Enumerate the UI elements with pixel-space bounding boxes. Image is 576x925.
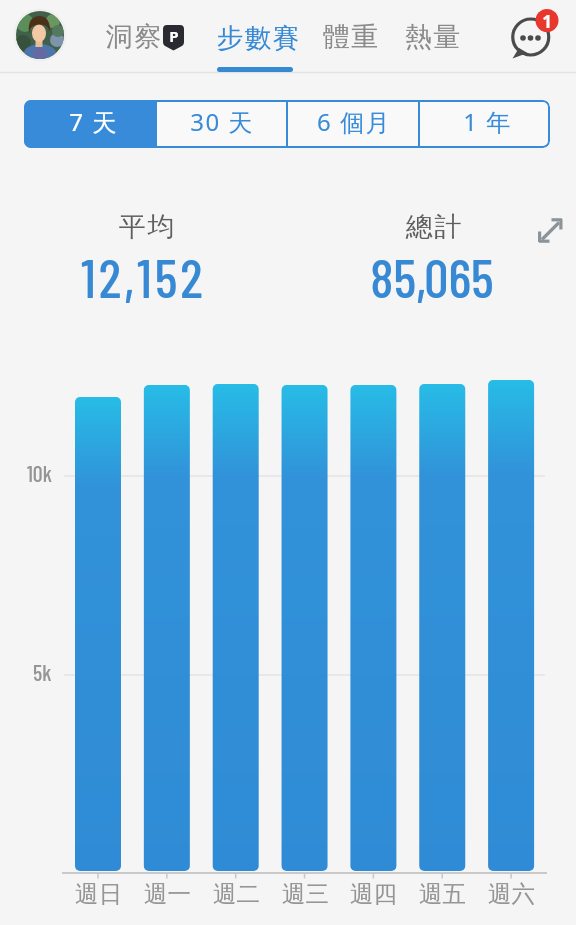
staticText: 週日 xyxy=(75,879,122,909)
button[interactable] xyxy=(24,100,156,148)
staticText: 12,152 xyxy=(81,244,206,309)
staticText: 步數賽 xyxy=(216,21,300,54)
staticText: 1 xyxy=(542,10,552,32)
staticText: 85,065 xyxy=(370,244,494,309)
staticText: 熱量 xyxy=(404,20,461,54)
staticText: 週五 xyxy=(419,879,466,909)
staticText: 體重 xyxy=(322,20,379,54)
staticText: 平均 xyxy=(118,210,175,244)
staticText: 週四 xyxy=(350,879,397,909)
staticText: 1 年 xyxy=(463,105,512,138)
staticText: 7 天 xyxy=(69,105,118,138)
button[interactable] xyxy=(287,100,419,148)
button[interactable] xyxy=(532,214,568,250)
staticText: 10k xyxy=(27,460,52,486)
staticText: 6 個月 xyxy=(317,105,391,138)
staticText: P xyxy=(169,26,179,46)
staticText: 週一 xyxy=(144,879,191,909)
staticText: 週二 xyxy=(213,879,260,909)
button[interactable]: 步數賽 xyxy=(193,14,323,60)
button[interactable]: 熱量 xyxy=(382,14,482,60)
button[interactable]: 洞察 xyxy=(78,14,188,60)
button[interactable] xyxy=(419,100,550,148)
staticText: 洞察 xyxy=(105,20,162,54)
button[interactable]: 體重 xyxy=(300,14,400,60)
button[interactable] xyxy=(13,8,67,62)
staticText: 週三 xyxy=(282,879,329,909)
staticText: 週六 xyxy=(488,879,535,909)
button[interactable] xyxy=(156,100,288,148)
button[interactable] xyxy=(505,10,561,66)
staticText: 總計 xyxy=(405,210,462,244)
staticText: 5k xyxy=(33,659,52,685)
staticText: 30 天 xyxy=(190,105,254,138)
